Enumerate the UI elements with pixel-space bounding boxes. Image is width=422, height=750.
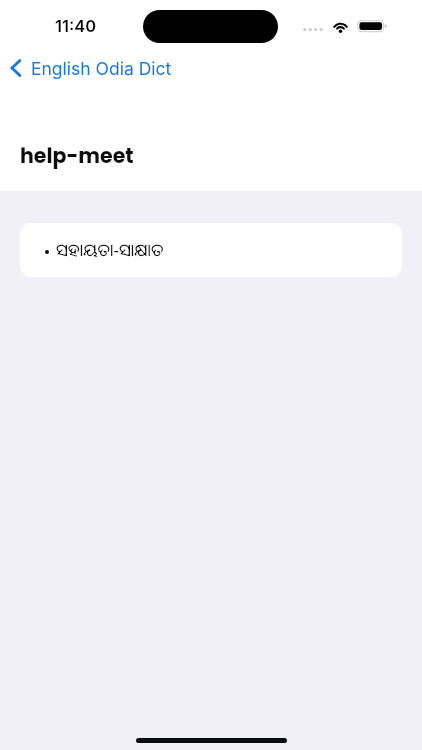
button[interactable]: Back to English Odia Dict bbox=[4, 53, 182, 83]
staticText: English Odia Dict bbox=[31, 58, 172, 79]
staticText: ସହାୟତା-ସାକ୍ଷାତ bbox=[56, 238, 164, 261]
staticText: help-meet bbox=[20, 141, 134, 170]
button[interactable]: ସହାୟତା-ସାକ୍ଷାତ bbox=[20, 223, 402, 277]
staticText: 11:40 bbox=[55, 16, 97, 36]
